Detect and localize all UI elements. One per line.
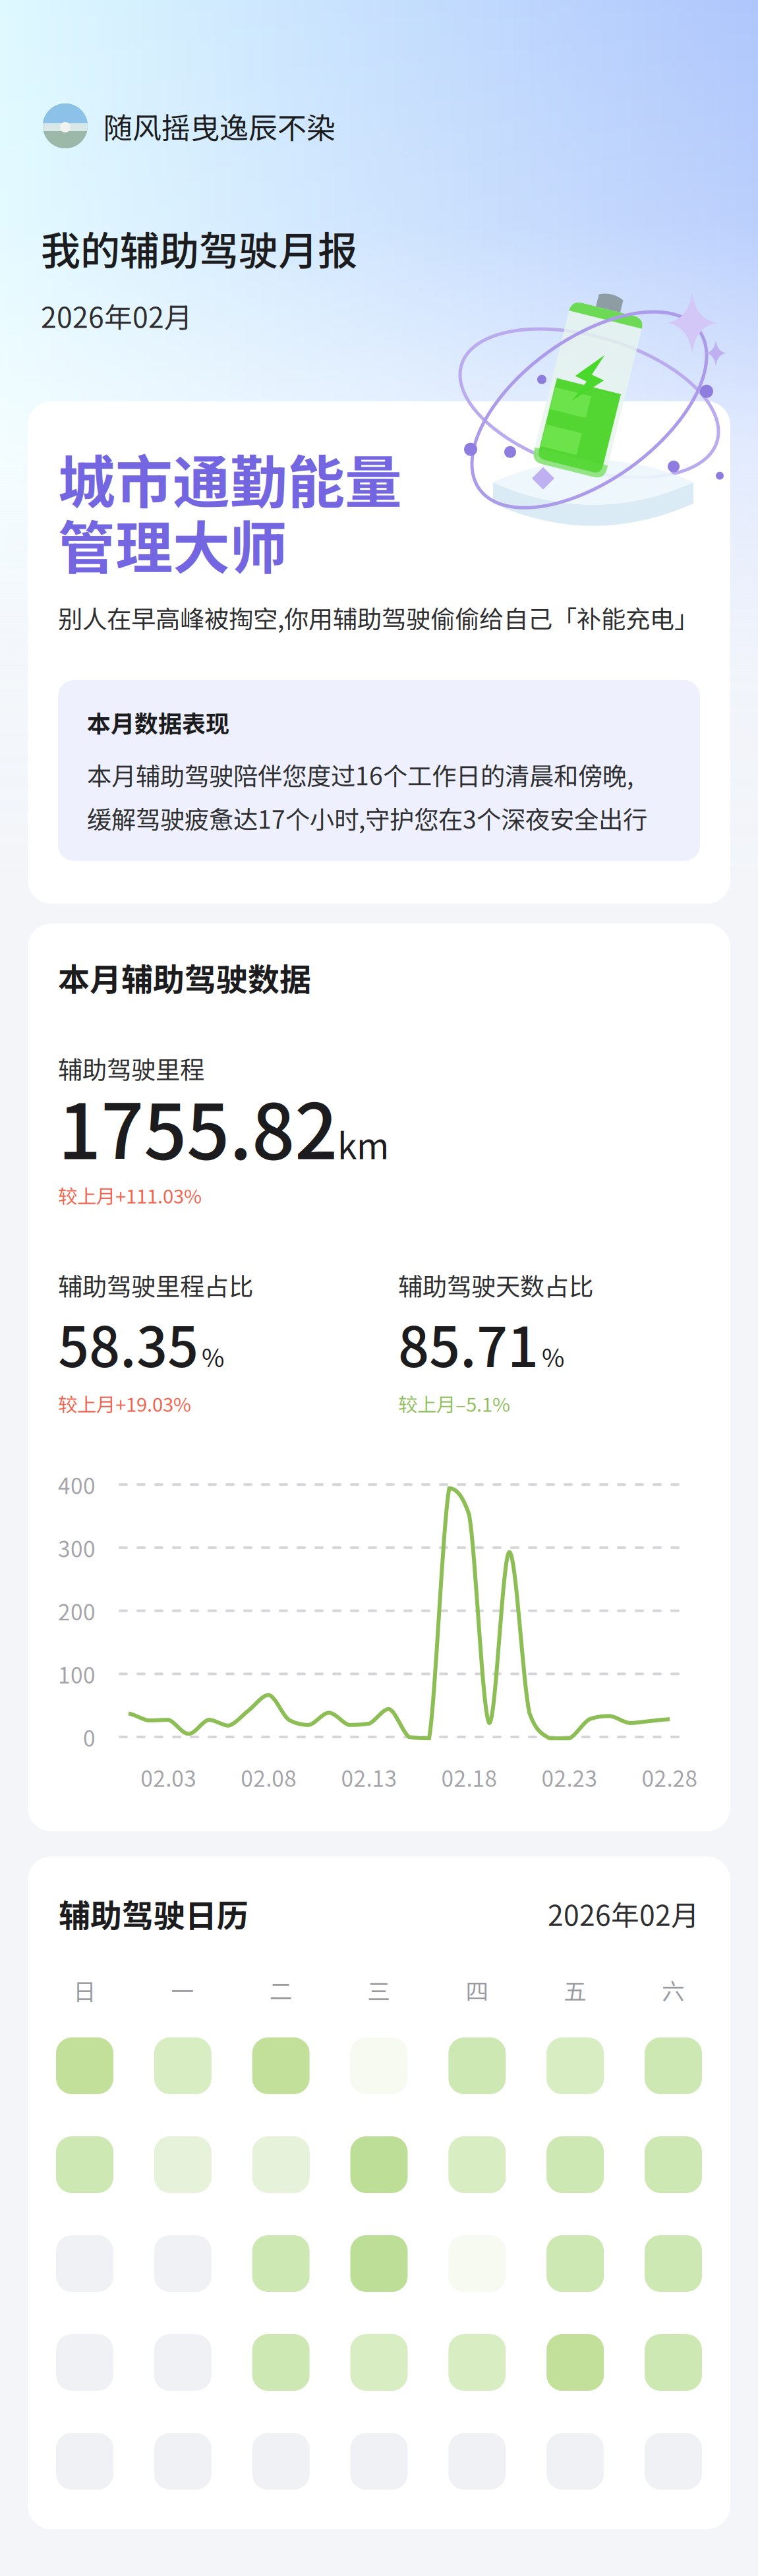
- staticText: 85.71: [398, 1304, 539, 1383]
- staticText: 100: [58, 1658, 96, 1690]
- staticText: 0: [83, 1721, 96, 1753]
- staticText: 辅助驾驶天数占比: [398, 1267, 593, 1303]
- staticText: 300: [58, 1532, 96, 1564]
- staticText: 辅助驾驶里程: [58, 1050, 204, 1086]
- staticText: %: [202, 1339, 224, 1374]
- staticText: 较上月–5.1%: [398, 1389, 510, 1417]
- staticText: 1755.82: [58, 1072, 337, 1181]
- staticText: 2026年02月: [41, 295, 192, 336]
- staticText: 400: [58, 1469, 96, 1500]
- staticText: 辅助驾驶日历: [59, 1891, 248, 1936]
- staticText: 02.23: [541, 1761, 598, 1793]
- staticText: 02.28: [642, 1761, 698, 1793]
- staticText: 较上月+111.03%: [58, 1181, 202, 1209]
- staticText: 02.18: [441, 1761, 497, 1793]
- staticText: 辅助驾驶里程占比: [58, 1267, 253, 1303]
- staticText: 管理大师: [58, 502, 287, 585]
- staticText: 58.35: [58, 1304, 198, 1383]
- staticText: 2026年02月: [548, 1893, 699, 1934]
- staticText: 六: [662, 1973, 685, 2006]
- staticText: %: [542, 1339, 564, 1374]
- staticText: 02.08: [241, 1761, 297, 1793]
- staticText: 02.13: [341, 1761, 397, 1793]
- button[interactable]: 随风摇曳逸辰不染: [0, 103, 335, 148]
- staticText: 缓解驾驶疲惫达17个小时,守护您在3个深夜安全出行: [87, 800, 647, 836]
- staticText: 三: [367, 1973, 391, 2006]
- staticText: 二: [269, 1973, 292, 2006]
- staticText: 本月辅助驾驶数据: [58, 954, 311, 1000]
- staticText: 别人在早高峰被掏空,你用辅助驾驶偷偷给自己「补能充电」: [58, 600, 699, 635]
- staticText: km: [337, 1118, 389, 1169]
- staticText: 我的辅助驾驶月报: [41, 220, 357, 277]
- staticText: 本月数据表现: [87, 705, 229, 739]
- staticText: 一: [171, 1973, 194, 2006]
- staticText: 城市通勤能量: [58, 437, 402, 520]
- staticText: 随风摇曳逸辰不染: [103, 105, 335, 147]
- staticText: 200: [58, 1595, 96, 1627]
- staticText: 本月辅助驾驶陪伴您度过16个工作日的清晨和傍晚,: [87, 757, 633, 792]
- staticText: 五: [564, 1973, 587, 2006]
- staticText: 日: [73, 1973, 96, 2006]
- staticText: 较上月+19.03%: [58, 1389, 191, 1417]
- staticText: 02.03: [141, 1761, 197, 1793]
- staticText: 四: [466, 1973, 489, 2006]
